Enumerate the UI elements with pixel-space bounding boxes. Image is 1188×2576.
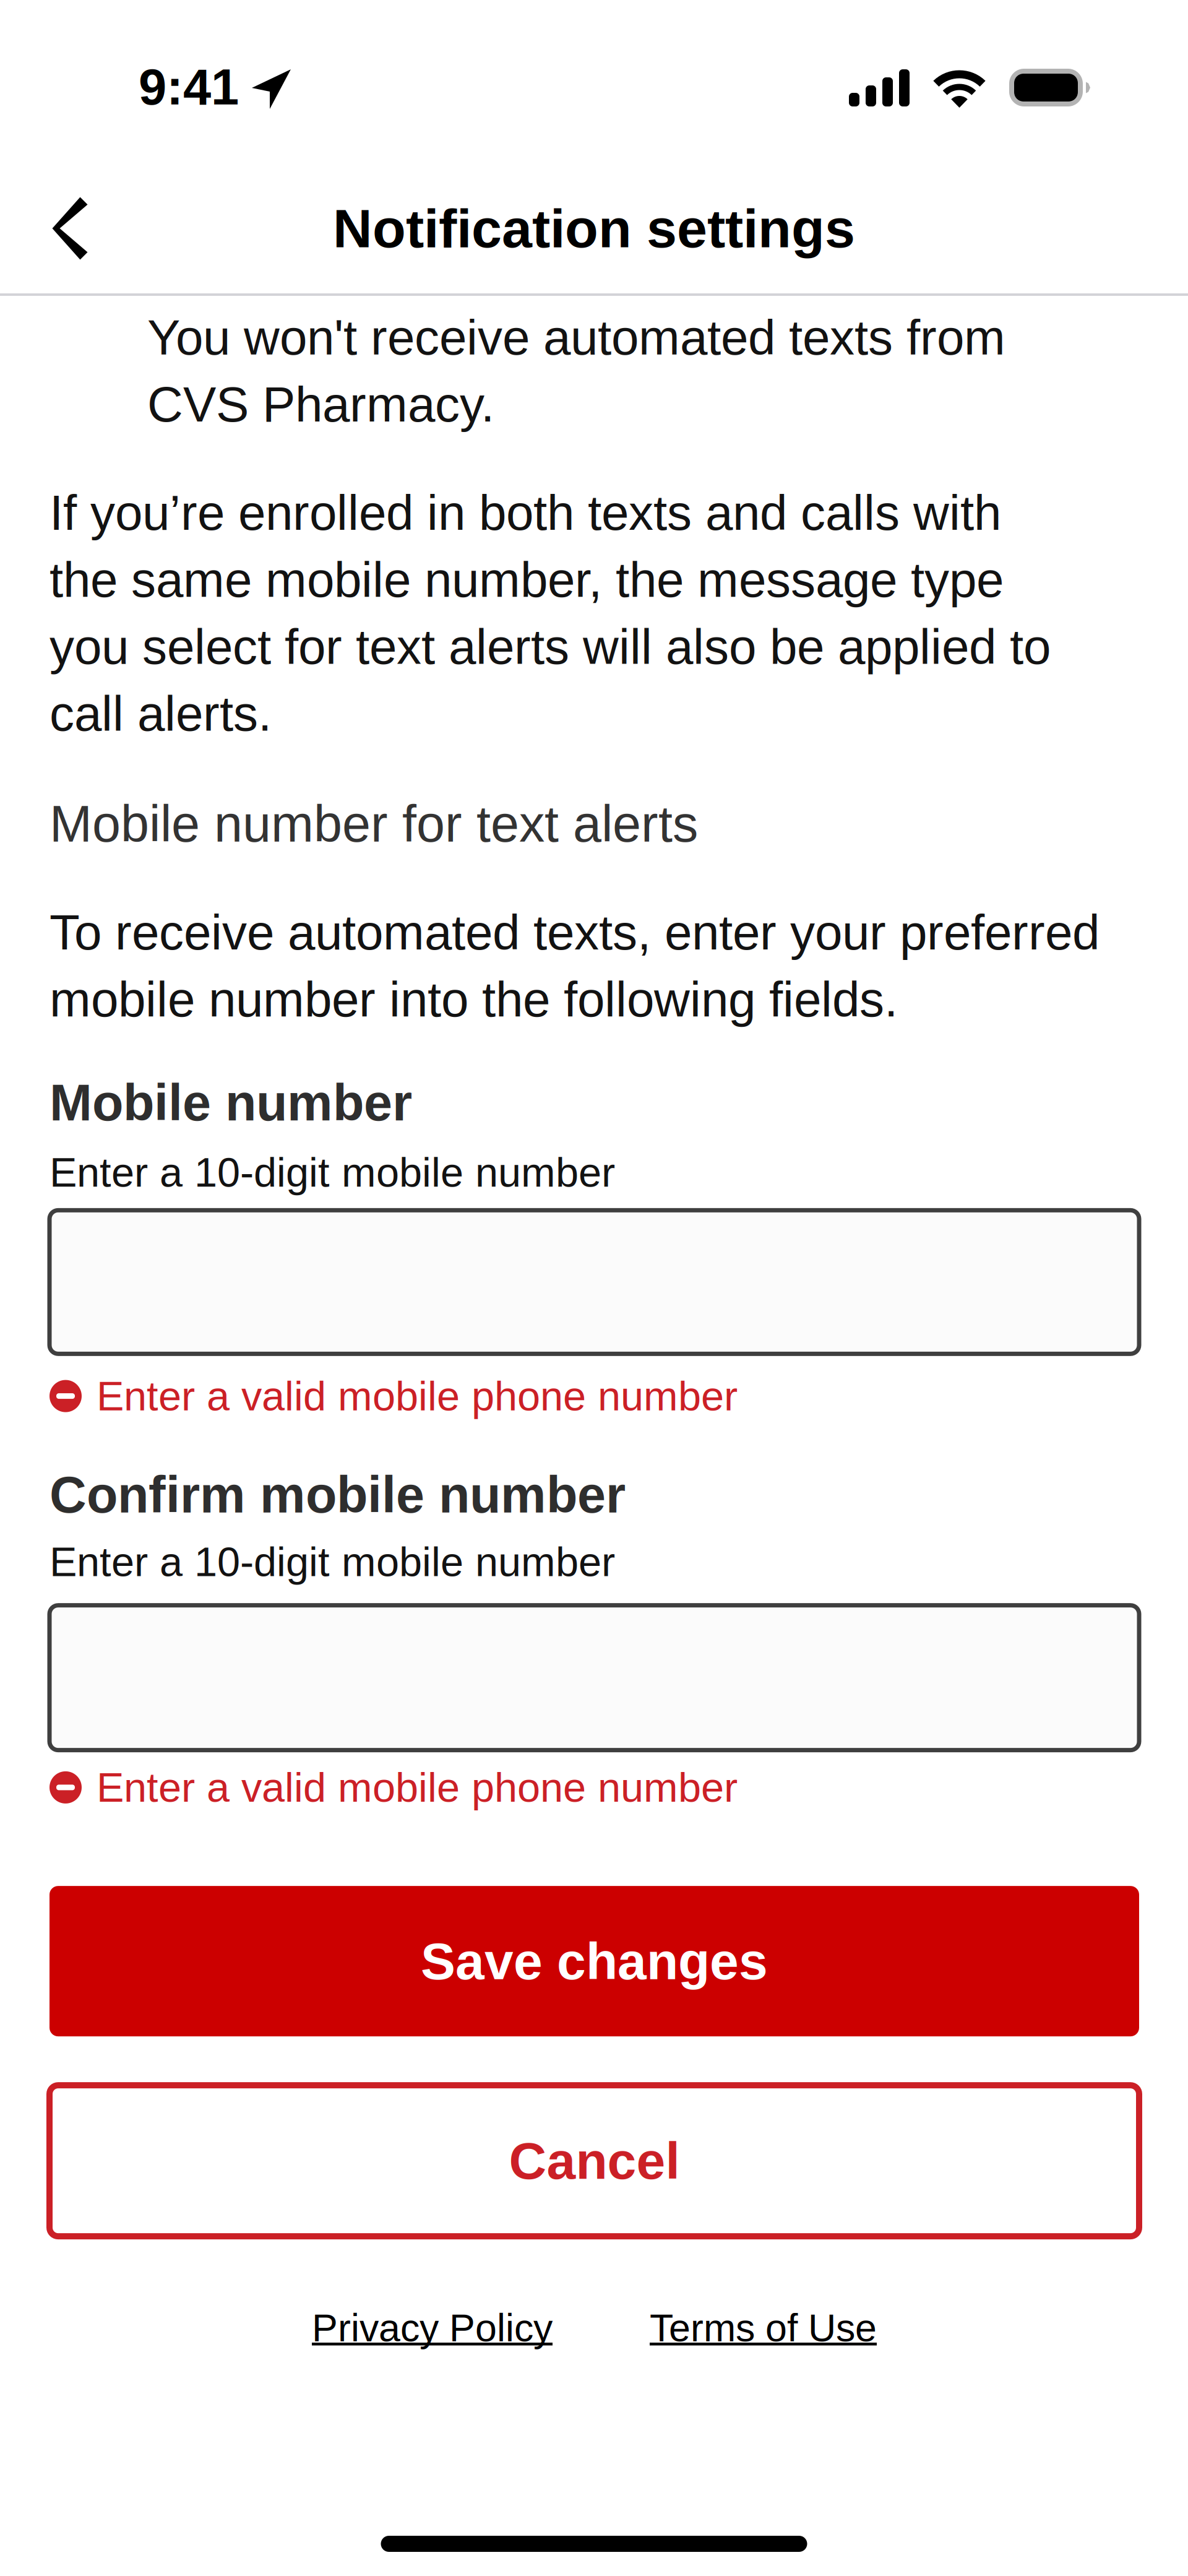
button[interactable]: Cancel — [49, 2085, 1139, 2236]
staticText: Notification settings — [333, 198, 855, 259]
staticText: Mobile number — [49, 1074, 412, 1131]
staticText: Mobile number for text alerts — [49, 795, 698, 852]
button[interactable]: Privacy Policy — [312, 2306, 553, 2350]
staticText: Enter a 10-digit mobile number — [49, 1539, 615, 1585]
staticText: Cancel — [509, 2132, 680, 2190]
staticText: 9:41 — [139, 59, 239, 115]
staticText: Privacy Policy — [312, 2306, 553, 2350]
staticText: To receive automated texts, enter your p… — [49, 899, 1100, 1033]
button[interactable]: Terms of Use — [650, 2306, 877, 2350]
staticText: If you’re enrolled in both texts and cal… — [49, 479, 1051, 747]
staticText: Enter a valid mobile phone number — [97, 1764, 738, 1811]
staticText: Enter a 10-digit mobile number — [49, 1149, 615, 1195]
button[interactable]: Back — [0, 152, 140, 293]
button[interactable]: Save changes — [49, 1886, 1139, 2036]
staticText: You won't receive automated texts from C… — [147, 304, 1005, 438]
staticText: Terms of Use — [650, 2306, 877, 2350]
staticText: Save changes — [421, 1932, 768, 1990]
staticText: Enter a valid mobile phone number — [97, 1373, 738, 1419]
staticText: Confirm mobile number — [49, 1466, 626, 1523]
